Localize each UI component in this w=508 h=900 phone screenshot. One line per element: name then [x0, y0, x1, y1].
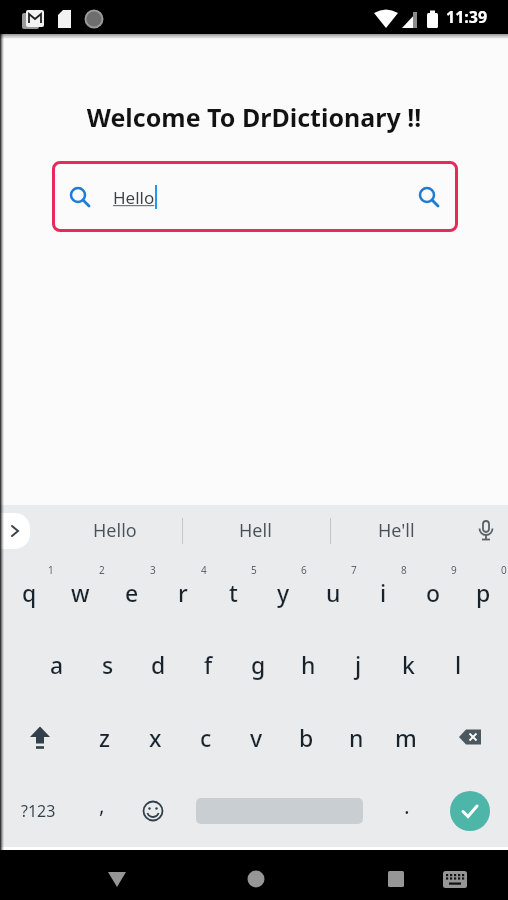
staticText: ,: [99, 791, 105, 820]
staticText: l: [455, 649, 462, 680]
button[interactable]: z: [79, 701, 130, 774]
staticText: o: [426, 577, 441, 608]
staticText: h: [301, 649, 316, 680]
staticText: q: [22, 577, 37, 608]
button[interactable]: u: [308, 556, 358, 628]
staticText: z: [99, 722, 110, 753]
staticText: ?123: [21, 800, 56, 822]
staticText: 2: [99, 563, 105, 577]
button[interactable]: [243, 866, 269, 892]
button[interactable]: e: [106, 556, 157, 628]
staticText: 7: [351, 563, 357, 577]
button[interactable]: r: [157, 556, 208, 628]
button[interactable]: a: [31, 628, 82, 701]
staticText: 6: [301, 563, 307, 577]
button[interactable]: i: [358, 556, 408, 628]
staticText: n: [349, 722, 364, 753]
staticText: r: [178, 577, 188, 608]
button[interactable]: [104, 866, 130, 892]
button[interactable]: [474, 519, 498, 543]
button[interactable]: b: [281, 701, 331, 774]
button[interactable]: n: [331, 701, 381, 774]
button[interactable]: f: [183, 628, 233, 701]
staticText: y: [277, 577, 290, 608]
staticText: s: [102, 649, 114, 680]
button[interactable]: d: [133, 628, 183, 701]
button[interactable]: ,: [76, 774, 127, 847]
staticText: x: [149, 722, 162, 753]
staticText: m: [395, 722, 417, 753]
staticText: Hello: [113, 186, 155, 209]
button[interactable]: v: [231, 701, 281, 774]
button[interactable]: ?123: [0, 774, 76, 847]
staticText: w: [71, 577, 90, 608]
button[interactable]: x: [130, 701, 181, 774]
staticText: f: [204, 649, 213, 680]
button[interactable]: [127, 774, 178, 847]
staticText: k: [402, 649, 415, 680]
staticText: p: [476, 577, 491, 608]
button[interactable]: l: [433, 628, 483, 701]
staticText: 0: [501, 563, 507, 577]
staticText: 4: [201, 563, 207, 577]
button[interactable]: w: [55, 556, 106, 628]
button[interactable]: [432, 774, 508, 847]
staticText: 3: [150, 563, 156, 577]
button[interactable]: g: [233, 628, 283, 701]
staticText: b: [299, 722, 314, 753]
button[interactable]: Hell: [239, 518, 272, 543]
button[interactable]: t: [208, 556, 258, 628]
button[interactable]: o: [408, 556, 458, 628]
staticText: d: [151, 649, 166, 680]
staticText: 11:39: [446, 6, 488, 28]
staticText: c: [200, 722, 212, 753]
button[interactable]: s: [82, 628, 133, 701]
button[interactable]: [383, 866, 409, 892]
button[interactable]: c: [181, 701, 231, 774]
staticText: 8: [401, 563, 407, 577]
button[interactable]: He'll: [378, 518, 415, 543]
button[interactable]: [431, 701, 508, 774]
staticText: g: [251, 649, 266, 680]
button[interactable]: [0, 513, 30, 549]
button[interactable]: .: [381, 774, 432, 847]
button[interactable]: y: [258, 556, 308, 628]
button[interactable]: [441, 865, 469, 893]
button[interactable]: k: [383, 628, 433, 701]
button[interactable]: j: [333, 628, 383, 701]
staticText: u: [326, 577, 341, 608]
button[interactable]: [178, 774, 381, 847]
button[interactable]: [0, 701, 79, 774]
staticText: j: [355, 649, 362, 680]
button[interactable]: q: [4, 556, 55, 628]
staticText: .: [404, 792, 410, 821]
staticText: a: [50, 649, 64, 680]
staticText: v: [250, 722, 263, 753]
staticText: 1: [48, 563, 54, 577]
button[interactable]: p: [458, 556, 508, 628]
button[interactable]: m: [381, 701, 431, 774]
staticText: e: [125, 577, 139, 608]
staticText: t: [229, 577, 238, 608]
button[interactable]: Hello: [52, 161, 458, 232]
staticText: Welcome To DrDictionary !!: [0, 100, 508, 134]
staticText: i: [380, 577, 387, 608]
staticText: 9: [451, 563, 457, 577]
button[interactable]: h: [283, 628, 333, 701]
button[interactable]: Hello: [93, 518, 137, 543]
staticText: 5: [251, 563, 257, 577]
